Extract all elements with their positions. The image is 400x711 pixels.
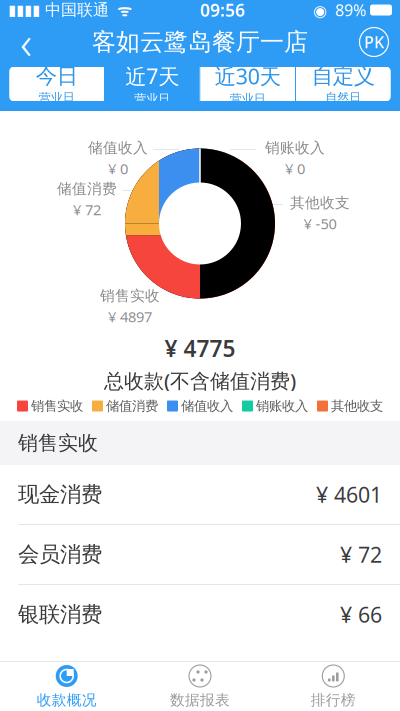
staticText: ¥ 72 [73,200,101,219]
staticText: 今日 [36,63,78,89]
staticText: 营业日 [230,91,266,106]
staticText: 其他收支 [290,194,350,212]
staticText: 自定义 [312,63,375,89]
button[interactable]: PK profile [348,20,400,64]
staticText: 现金消费 [18,481,102,508]
staticText: 储值消费 [106,398,158,414]
staticText: ¥ 4601 [316,480,382,509]
staticText: 近7天 [125,62,179,90]
staticText: 储值收入 [88,139,148,157]
staticText: 中国联通 [40,0,109,20]
staticText: 客如云鹭岛餐厅一店 [92,27,308,57]
staticText: 自然日 [325,90,361,105]
staticText: 储值消费 [57,180,117,198]
staticText: 数据报表 [170,691,230,709]
button[interactable]: 自定义 [296,67,390,101]
button[interactable]: 收款概况 [0,662,133,711]
staticText: 会员消费 [18,541,102,568]
button[interactable]: 今日 [9,67,104,101]
staticText: PK [364,31,384,53]
staticText: 其他收支 [331,398,383,414]
button[interactable]: 数据报表 [133,662,267,711]
button[interactable]: 会员消费 [0,525,400,585]
staticText: ¥ 0 [108,159,128,178]
staticText: 09:56 [200,0,245,21]
staticText: ¥ 66 [340,600,382,629]
staticText: 销售实收 [18,431,98,455]
staticText: ¥ -50 [303,214,336,233]
button[interactable]: Back [0,20,52,64]
staticText: 储值收入 [181,398,233,414]
staticText: ▮▮▮▮ [8,2,40,18]
staticText: 收款概况 [37,691,97,709]
staticText: 银联消费 [18,601,102,628]
button[interactable]: 近7天 [105,67,199,101]
staticText: 排行榜 [311,691,356,709]
staticText: 销账收入 [265,139,325,157]
staticText: 销售实收 [31,398,83,414]
staticText: ◉ 89% [313,0,366,21]
button[interactable]: 银联消费 [0,585,400,645]
staticText: 总收款(不含储值消费) [104,367,296,394]
staticText: ‹ [20,12,32,72]
staticText: ¥ 72 [340,540,382,569]
staticText: 近30天 [215,62,281,90]
button[interactable]: 现金消费 [0,465,400,525]
button[interactable]: 近30天 [200,67,295,101]
staticText: ¥ 0 [285,159,305,178]
staticText: 营业日 [39,90,75,105]
staticText: ¥ 4775 [164,333,235,363]
staticText: 营业日 [134,91,170,106]
staticText: 销售实收 [100,287,160,305]
button[interactable]: 排行榜 [267,662,400,711]
staticText: 销账收入 [256,398,308,414]
staticText: ᯤ [109,0,132,21]
staticText: ¥ 4897 [108,307,152,326]
